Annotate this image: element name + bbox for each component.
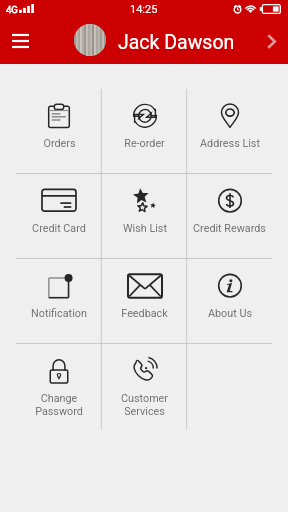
button[interactable]: Credit Card — [16, 174, 102, 259]
button[interactable]: Orders — [16, 89, 102, 174]
staticText: Change Password — [35, 392, 83, 417]
button[interactable]: Menu — [0, 21, 40, 61]
staticText: Feedback — [121, 307, 168, 320]
button[interactable]: Open profile — [256, 18, 288, 64]
staticText: Orders — [43, 137, 76, 150]
button[interactable]: Credit Rewards — [187, 174, 272, 259]
button[interactable]: About Us — [187, 259, 272, 344]
button[interactable]: Notification — [16, 259, 102, 344]
staticText: 14:25 — [130, 3, 158, 16]
staticText: Jack Dawson — [118, 31, 235, 54]
staticText: Re-order — [124, 137, 165, 150]
staticText: 4G — [6, 4, 18, 15]
staticText: About Us — [208, 307, 252, 320]
button[interactable]: Change Password — [16, 344, 102, 429]
button[interactable]: Customer Services — [102, 344, 187, 429]
staticText: Address List — [200, 137, 260, 150]
staticText: Credit Card — [32, 222, 86, 235]
staticText: Credit Rewards — [193, 222, 266, 235]
staticText: Notification — [31, 307, 87, 320]
button[interactable]: Feedback — [102, 259, 187, 344]
staticText: Customer Services — [121, 392, 168, 417]
button[interactable]: Address List — [187, 89, 272, 174]
button[interactable]: Re-order — [102, 89, 187, 174]
button[interactable]: Wish List — [102, 174, 187, 259]
staticText: Wish List — [123, 222, 167, 235]
